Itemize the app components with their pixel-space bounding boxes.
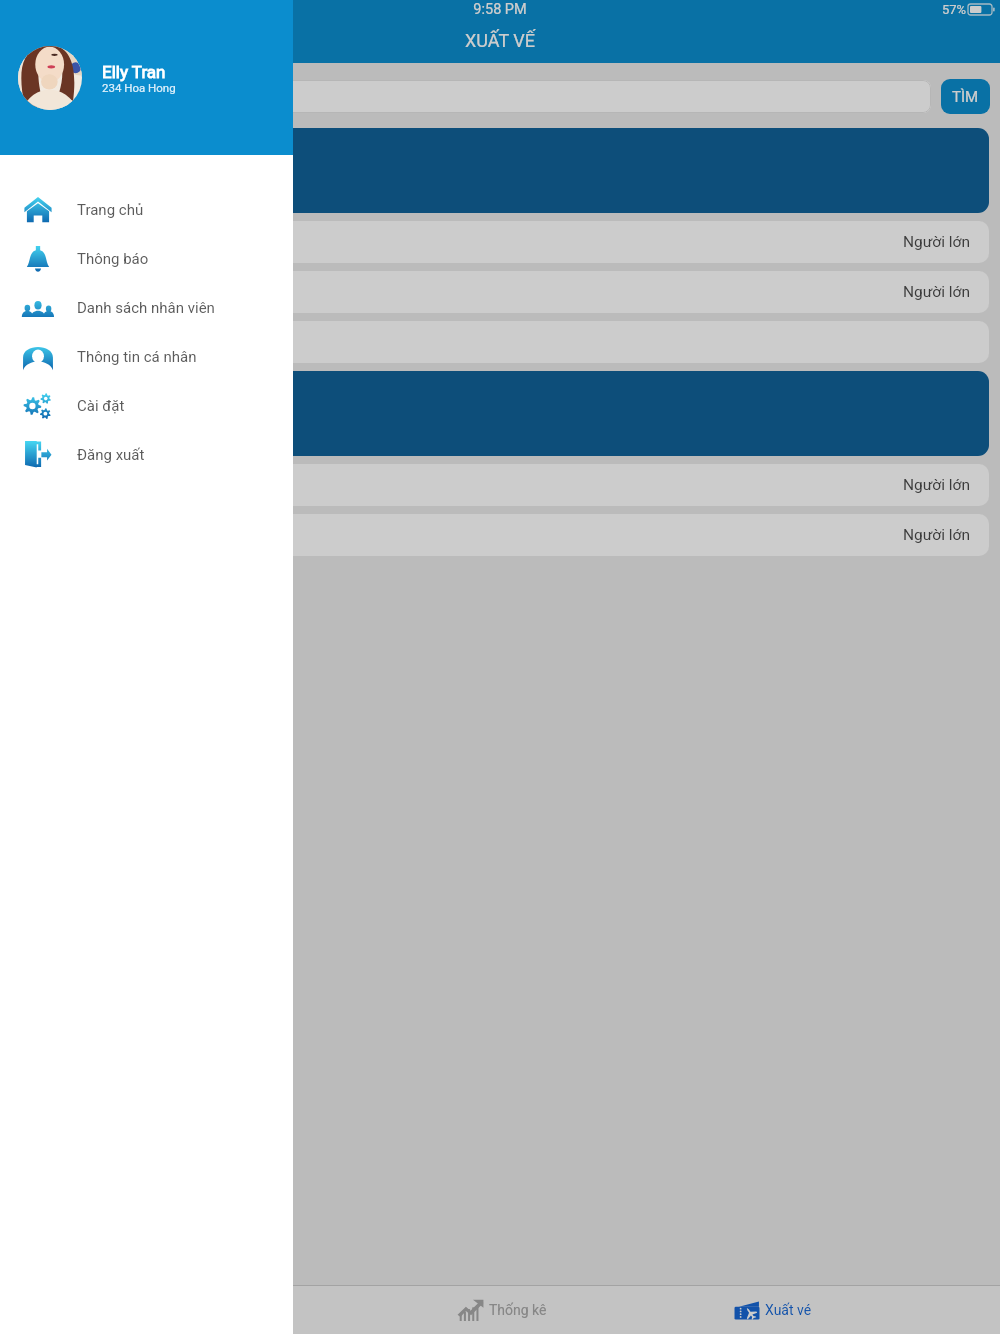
button[interactable]: Danh sách nhân viên: [0, 283, 293, 332]
button[interactable]: Trip: [11, 128, 989, 213]
staticText: Người lớn: [903, 476, 971, 494]
button[interactable]: Cài đặt: [0, 381, 293, 430]
button[interactable]: Người lớn: [11, 271, 989, 313]
button[interactable]: Người lớn: [11, 221, 989, 263]
button[interactable]: TÌM: [941, 79, 990, 114]
button[interactable]: Xuất vé: [734, 1286, 812, 1334]
staticText: 9:58 PM: [0, 1, 1000, 18]
button[interactable]: Profile photo: [18, 46, 82, 110]
button[interactable]: Người lớn: [11, 464, 989, 506]
button[interactable]: Search field: [11, 80, 931, 113]
other: Battery 57 percent: [968, 4, 995, 15]
button[interactable]: Ticket row: [11, 321, 989, 363]
staticText: Người lớn: [903, 233, 971, 251]
button[interactable]: Trang chủ: [0, 185, 293, 234]
staticText: Người lớn: [903, 283, 971, 301]
staticText: Thông tin cá nhân: [77, 348, 197, 366]
staticText: Xuất vé: [765, 1302, 812, 1318]
button[interactable]: Thông báo: [0, 234, 293, 283]
staticText: Thông báo: [77, 250, 149, 268]
button[interactable]: Thông tin cá nhân: [0, 332, 293, 381]
staticText: TÌM: [952, 88, 979, 106]
button[interactable]: Trip: [11, 371, 989, 456]
button[interactable]: Đăng xuất: [0, 430, 293, 479]
staticText: Elly Tran: [102, 62, 166, 82]
staticText: 234 Hoa Hong: [102, 81, 176, 94]
staticText: Người lớn: [903, 526, 971, 544]
button[interactable]: Người lớn: [11, 514, 989, 556]
staticText: Đăng xuất: [77, 446, 145, 464]
staticText: Cài đặt: [77, 397, 125, 415]
staticText: 57%: [942, 2, 967, 17]
staticText: Thống kê: [489, 1302, 547, 1318]
button[interactable]: Thống kê: [457, 1286, 547, 1334]
staticText: Trang chủ: [77, 201, 144, 219]
staticText: Danh sách nhân viên: [77, 299, 215, 317]
staticText: XUẤT VẾ: [0, 30, 1000, 51]
